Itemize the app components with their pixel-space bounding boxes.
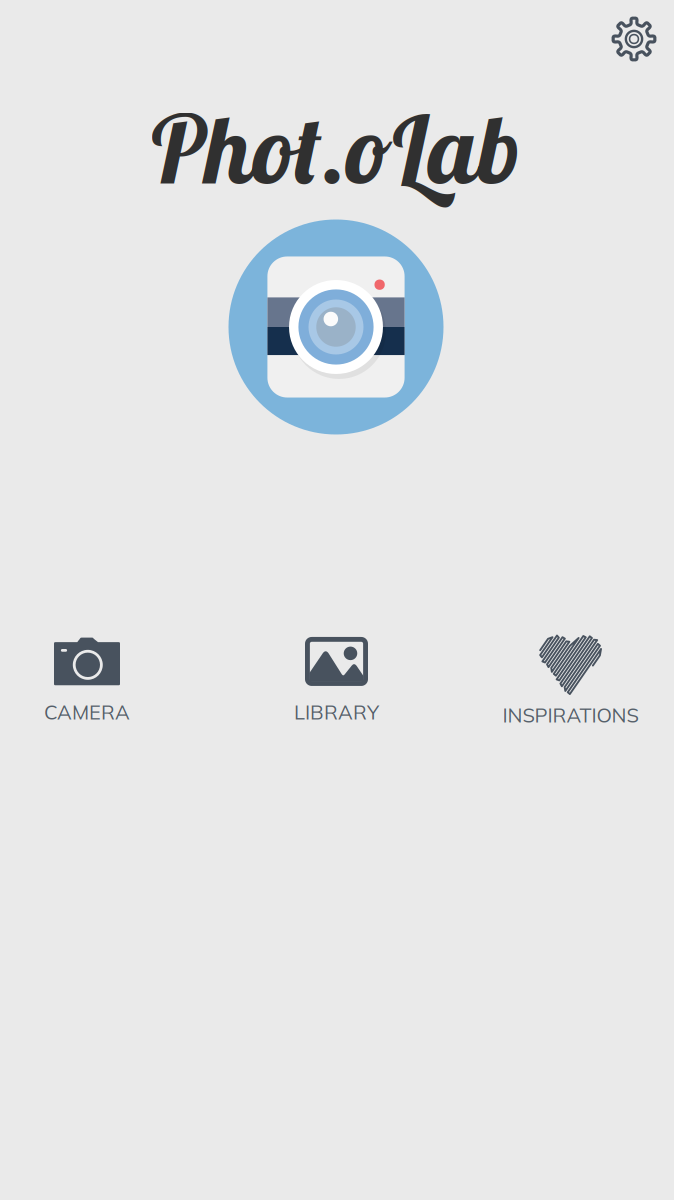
staticText: INSPIRATIONS [502,702,638,728]
staticText: CAMERA [44,699,130,725]
staticText: Phot.oLab [151,89,520,207]
button[interactable]: Settings [602,7,666,71]
button[interactable]: CAMERA [30,631,144,731]
staticText: LIBRARY [294,699,379,725]
button[interactable]: LIBRARY [280,631,393,731]
button[interactable]: INSPIRATIONS [488,634,652,734]
